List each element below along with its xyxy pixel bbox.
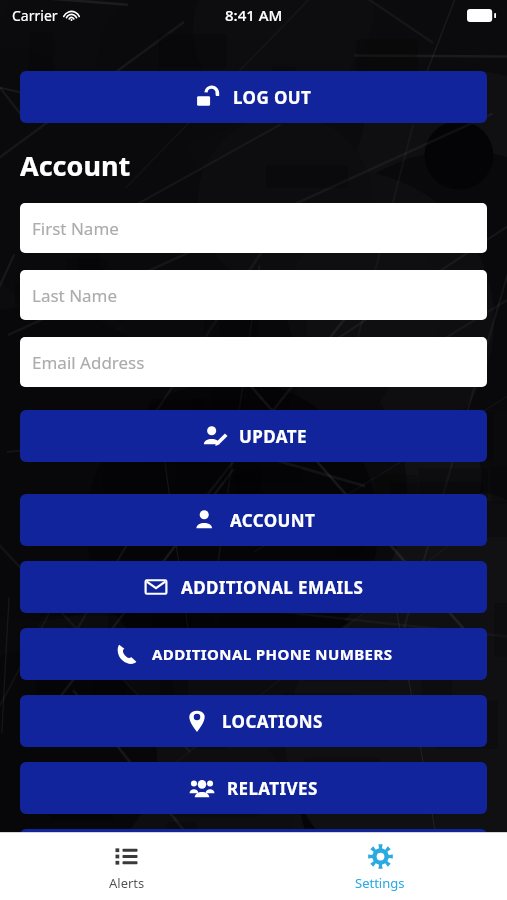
button[interactable]: LOG OUT — [20, 71, 487, 123]
staticText: First Name — [32, 217, 119, 240]
button[interactable]: Last Name — [20, 270, 487, 320]
staticText: UPDATE — [239, 425, 307, 448]
button[interactable]: LOCATIONS — [20, 695, 487, 747]
staticText: ADDITIONAL PHONE NUMBERS — [152, 644, 393, 664]
button[interactable]: Settings — [253, 833, 507, 900]
button[interactable]: ADDITIONAL EMAILS — [20, 561, 487, 613]
staticText: LOCATIONS — [222, 710, 323, 733]
staticText: Last Name — [32, 284, 118, 307]
button[interactable]: More options — [20, 829, 487, 881]
button[interactable]: RELATIVES — [20, 762, 487, 814]
staticText: ADDITIONAL EMAILS — [181, 576, 364, 599]
button[interactable]: ADDITIONAL PHONE NUMBERS — [20, 628, 487, 680]
button[interactable]: ACCOUNT — [20, 494, 487, 546]
staticText: LOG OUT — [233, 86, 312, 109]
button[interactable]: First Name — [20, 203, 487, 253]
staticText: RELATIVES — [227, 777, 318, 800]
staticText: Account — [20, 147, 131, 184]
staticText: 8:41 AM — [225, 5, 283, 25]
staticText: Settings — [355, 874, 405, 892]
staticText: Alerts — [109, 874, 145, 892]
button[interactable]: UPDATE — [20, 410, 487, 462]
staticText: Carrier — [12, 6, 58, 25]
button[interactable]: Email Address — [20, 337, 487, 387]
staticText: Email Address — [32, 351, 145, 374]
button[interactable]: Alerts — [0, 833, 253, 900]
staticText: ACCOUNT — [230, 509, 316, 532]
